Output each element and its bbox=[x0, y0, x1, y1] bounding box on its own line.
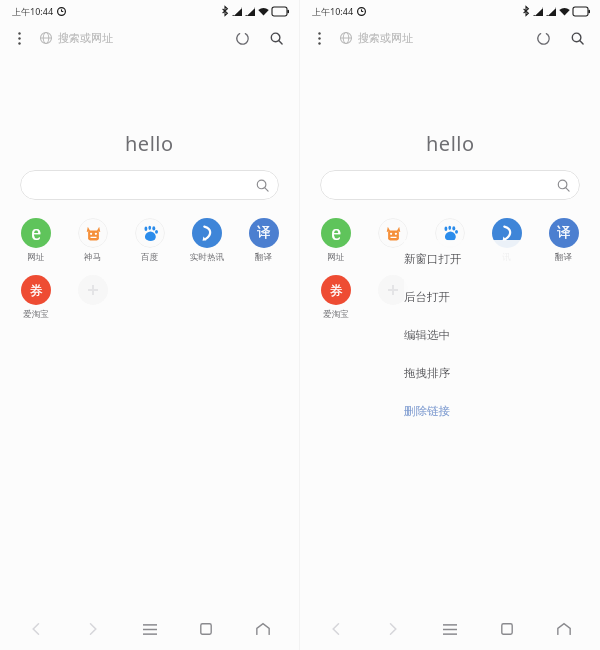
button[interactable]: Forward bbox=[71, 612, 115, 646]
button[interactable]: Menu bbox=[428, 612, 472, 646]
button[interactable]: More options bbox=[8, 27, 30, 49]
staticText: 讯 bbox=[502, 252, 511, 263]
button[interactable]: Tabs bbox=[184, 612, 228, 646]
staticText: e bbox=[331, 220, 342, 246]
staticText: hello bbox=[125, 130, 174, 157]
staticText: 爱淘宝 bbox=[23, 309, 49, 320]
button[interactable]: 搜索或网址 bbox=[340, 31, 413, 45]
button[interactable]: Refresh bbox=[530, 25, 556, 51]
staticText: 编辑选中 bbox=[404, 328, 450, 342]
button[interactable]: 译 bbox=[235, 218, 292, 263]
staticText: 拖拽排序 bbox=[404, 366, 450, 380]
staticText: 百度 bbox=[141, 252, 158, 263]
button[interactable] bbox=[421, 218, 478, 263]
button[interactable]: 百度 bbox=[121, 218, 178, 263]
button[interactable] bbox=[364, 275, 421, 320]
staticText: 译 bbox=[557, 224, 571, 242]
staticText: 券 bbox=[30, 282, 43, 298]
staticText: 后台打开 bbox=[404, 290, 450, 304]
button[interactable]: Back bbox=[14, 612, 58, 646]
button[interactable]: Back bbox=[314, 612, 358, 646]
staticText: 上午10:44 bbox=[312, 5, 354, 17]
button[interactable]: Search bbox=[564, 25, 590, 51]
button[interactable]: Home bbox=[542, 612, 586, 646]
staticText: 神马 bbox=[84, 252, 101, 263]
button[interactable]: 删除链接 bbox=[404, 392, 524, 430]
staticText: 券 bbox=[330, 282, 343, 298]
button[interactable]: Menu bbox=[128, 612, 172, 646]
staticText: 译 bbox=[257, 224, 271, 242]
staticText: 翻译 bbox=[555, 252, 572, 263]
button[interactable]: e bbox=[7, 218, 64, 263]
button[interactable]: Refresh bbox=[229, 25, 255, 51]
button[interactable]: 拖拽排序 bbox=[404, 354, 524, 392]
button[interactable]: 券 bbox=[7, 275, 64, 320]
button[interactable]: Home bbox=[241, 612, 285, 646]
button[interactable]: 新窗口打开 bbox=[404, 240, 524, 278]
staticText: 搜索或网址 bbox=[358, 31, 413, 45]
staticText: 上午10:44 bbox=[12, 5, 54, 17]
button[interactable]: 编辑选中 bbox=[404, 316, 524, 354]
staticText: 搜索或网址 bbox=[58, 31, 113, 45]
button[interactable]: Forward bbox=[371, 612, 415, 646]
button[interactable] bbox=[64, 275, 121, 320]
button[interactable]: More options bbox=[308, 27, 330, 49]
button[interactable]: 实时热讯 bbox=[178, 218, 235, 263]
staticText: e bbox=[31, 220, 42, 246]
button[interactable]: 搜索或网址 bbox=[40, 31, 113, 45]
button[interactable]: 神马 bbox=[64, 218, 121, 263]
button[interactable]: 后台打开 bbox=[404, 278, 524, 316]
staticText: 网址 bbox=[327, 252, 344, 263]
button[interactable] bbox=[364, 218, 421, 263]
button[interactable]: Search bbox=[263, 25, 289, 51]
button[interactable]: e bbox=[307, 218, 364, 263]
button[interactable]: 讯 bbox=[478, 218, 535, 263]
staticText: 新窗口打开 bbox=[404, 252, 462, 266]
button[interactable]: Tabs bbox=[485, 612, 529, 646]
staticText: 翻译 bbox=[255, 252, 272, 263]
button[interactable]: 券 bbox=[307, 275, 364, 320]
button[interactable] bbox=[320, 170, 580, 200]
staticText: 爱淘宝 bbox=[323, 309, 349, 320]
staticText: hello bbox=[426, 130, 475, 157]
button[interactable] bbox=[20, 170, 279, 200]
button[interactable]: 译 bbox=[535, 218, 592, 263]
staticText: 删除链接 bbox=[404, 404, 450, 418]
staticText: 网址 bbox=[27, 252, 44, 263]
staticText: 实时热讯 bbox=[190, 252, 224, 263]
